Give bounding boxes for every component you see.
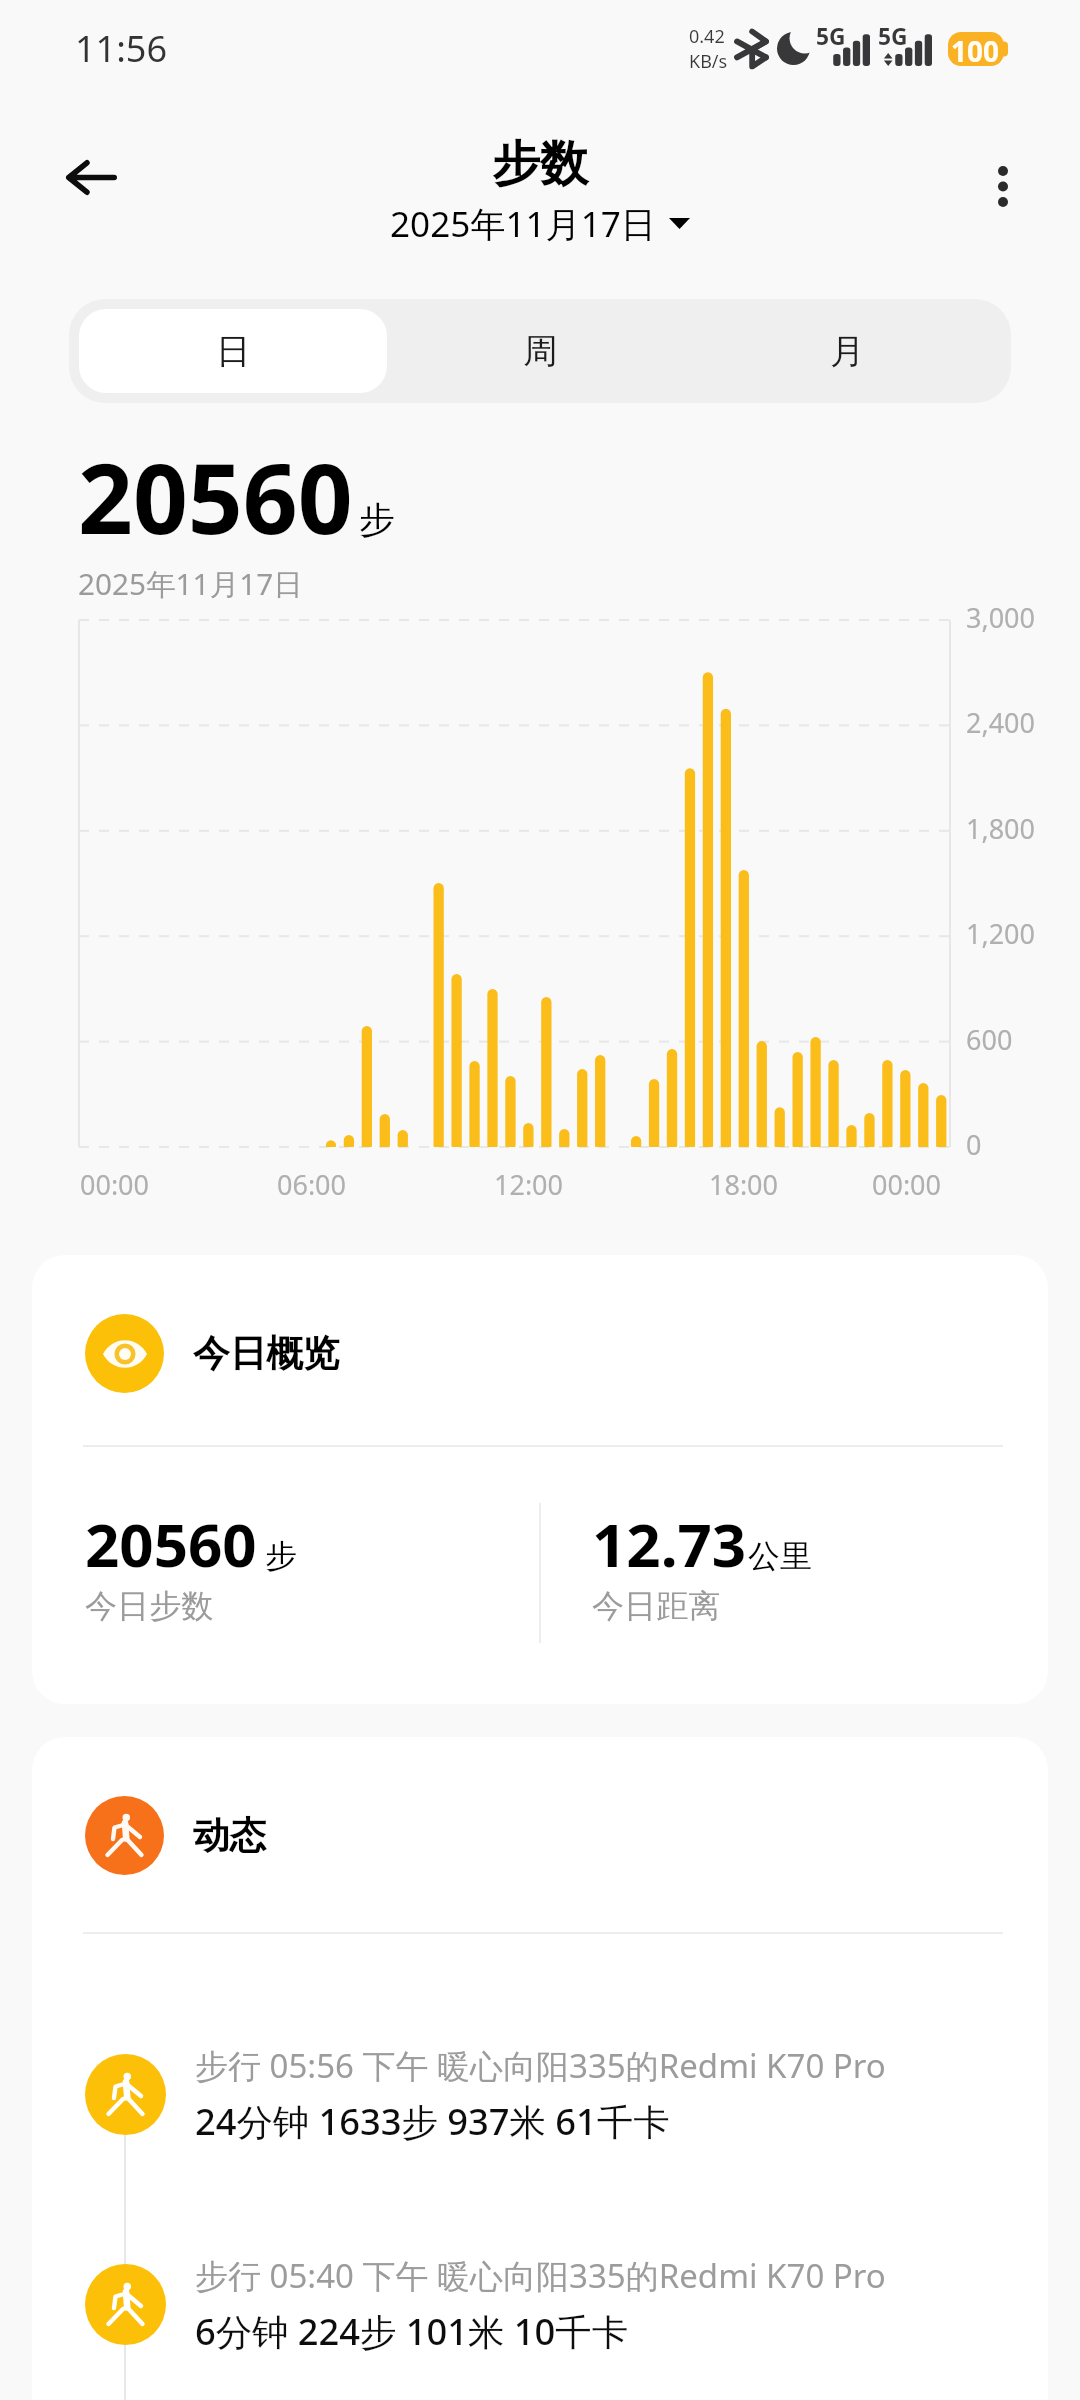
staticText: 周 xyxy=(523,330,558,373)
staticText: 1,200 xyxy=(966,915,1036,952)
button[interactable]: Back xyxy=(45,131,138,224)
staticText: 步 xyxy=(265,1536,297,1576)
staticText: 100 xyxy=(951,32,999,66)
staticText: 18:00 xyxy=(709,1166,779,1203)
staticText: 12:00 xyxy=(494,1166,564,1203)
staticText: 5G xyxy=(878,21,908,52)
staticText: 5G xyxy=(816,21,846,52)
staticText: 动态 xyxy=(193,1813,267,1859)
button[interactable]: More options xyxy=(956,140,1049,233)
staticText: 2025年11月17日 xyxy=(390,199,656,247)
staticText: 06:00 xyxy=(277,1166,347,1203)
staticText: 步数 xyxy=(492,134,588,194)
staticText: 日 xyxy=(216,330,251,373)
staticText: 6分钟 224步 101米 10千卡 xyxy=(195,2306,628,2356)
staticText: 3,000 xyxy=(966,599,1036,636)
staticText: 今日概览 xyxy=(193,1331,340,1377)
staticText: 1,800 xyxy=(966,810,1036,847)
button[interactable]: 周 xyxy=(387,309,694,393)
staticText: 20560 xyxy=(78,431,353,562)
staticText: 2,400 xyxy=(966,704,1036,741)
staticText: 月 xyxy=(830,330,865,373)
staticText: 步行 05:56 下午 暖心向阳335的Redmi K70 Pro xyxy=(195,2043,886,2088)
staticText: KB/s xyxy=(689,49,728,74)
staticText: 公里 xyxy=(748,1536,812,1576)
staticText: 24分钟 1633步 937米 61千卡 xyxy=(195,2096,670,2146)
button[interactable]: 2025年11月17日 xyxy=(384,196,696,250)
staticText: 12.73 xyxy=(592,1503,747,1585)
button[interactable]: 今日概览 xyxy=(32,1255,1048,1704)
staticText: 0.42 xyxy=(689,24,725,49)
staticText: 0 xyxy=(966,1126,982,1163)
button[interactable]: 月 xyxy=(694,309,1001,393)
staticText: 20560 xyxy=(85,1503,257,1585)
button[interactable]: 步行 05:56 下午 暖心向阳335的Redmi K70 Pro xyxy=(85,2043,1048,2146)
staticText: 00:00 xyxy=(872,1166,942,1203)
staticText: 今日距离 xyxy=(592,1586,721,1626)
staticText: 2025年11月17日 xyxy=(78,563,303,604)
staticText: 11:56 xyxy=(75,24,168,73)
staticText: 今日步数 xyxy=(85,1586,214,1626)
staticText: 步 xyxy=(359,497,395,542)
staticText: 步行 05:40 下午 暖心向阳335的Redmi K70 Pro xyxy=(195,2253,886,2298)
staticText: 600 xyxy=(966,1021,1013,1058)
staticText: 00:00 xyxy=(80,1166,150,1203)
button[interactable]: 日 xyxy=(79,309,387,393)
button[interactable]: 步行 05:40 下午 暖心向阳335的Redmi K70 Pro xyxy=(85,2253,1048,2356)
